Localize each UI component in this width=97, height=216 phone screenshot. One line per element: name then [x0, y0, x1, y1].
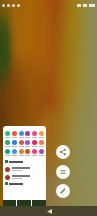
button[interactable]: Edit: [56, 184, 70, 198]
button[interactable]: Back: [39, 206, 59, 216]
button[interactable]: Text: [56, 165, 70, 179]
button[interactable]: [3, 126, 46, 216]
button[interactable]: Share: [56, 145, 70, 159]
